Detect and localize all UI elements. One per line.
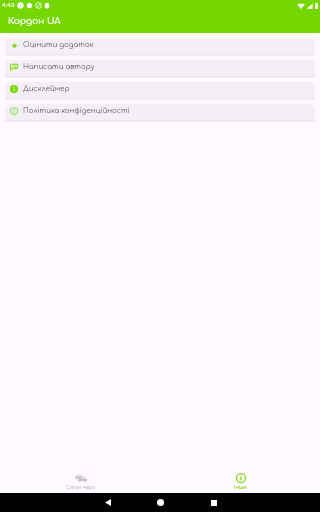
button[interactable]: Recents: [204, 493, 224, 512]
button[interactable]: Back: [98, 493, 118, 512]
button[interactable]: Стан черг: [54, 470, 107, 491]
staticText: Політика конфіденційності: [23, 107, 130, 115]
staticText: Інше: [234, 485, 247, 491]
button[interactable]: Дисклеймер: [5, 82, 315, 98]
button[interactable]: Інше: [222, 469, 259, 491]
button[interactable]: Політика конфіденційності: [5, 104, 315, 120]
button[interactable]: Оцінити додаток: [5, 38, 315, 54]
button[interactable]: Home: [150, 493, 170, 512]
staticText: 4:43: [2, 2, 15, 9]
staticText: Дисклеймер: [23, 85, 70, 93]
staticText: Кордон UA: [8, 16, 61, 26]
staticText: Написати автору: [23, 63, 95, 71]
button[interactable]: Написати автору: [5, 60, 315, 76]
staticText: Стан черг: [66, 485, 95, 491]
staticText: Оцінити додаток: [23, 41, 94, 49]
